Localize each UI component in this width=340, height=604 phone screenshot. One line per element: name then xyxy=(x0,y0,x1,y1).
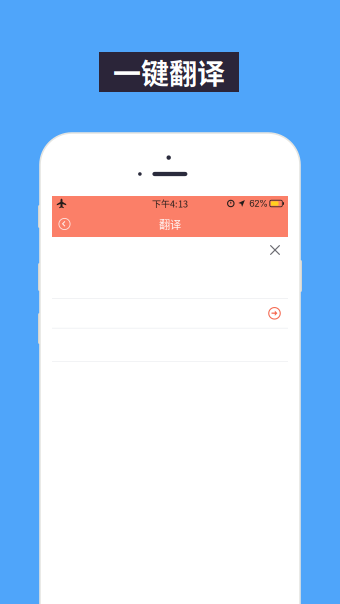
staticText: 下午4:13 xyxy=(152,197,188,210)
button[interactable]: Translate xyxy=(268,307,281,320)
staticText: 翻译 xyxy=(159,216,181,232)
staticText: 62% xyxy=(249,198,268,209)
staticText: 一键翻译 xyxy=(113,52,225,92)
button[interactable]: Clear xyxy=(267,242,282,257)
button[interactable]: Back xyxy=(58,217,71,230)
